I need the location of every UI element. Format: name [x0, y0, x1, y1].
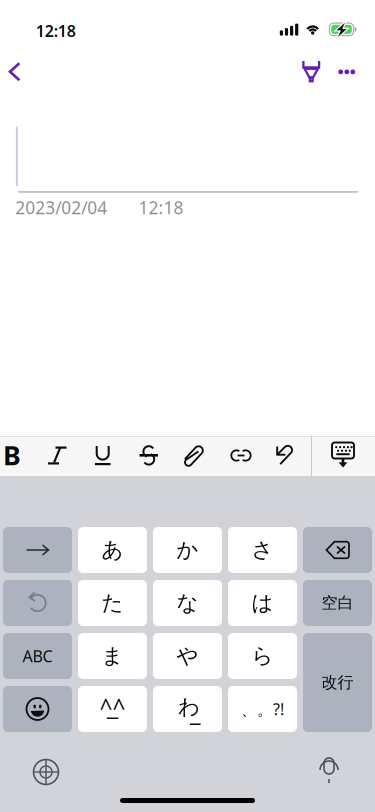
staticText: 12:18	[36, 20, 76, 41]
staticText: た	[101, 590, 123, 616]
staticText: 、。?!	[241, 698, 284, 720]
button[interactable]	[228, 580, 297, 626]
button[interactable]: Delete	[303, 527, 372, 573]
staticText: さ	[251, 537, 273, 563]
staticText: わ	[178, 694, 200, 720]
button[interactable]	[303, 580, 372, 626]
button[interactable]: Bold	[0, 436, 34, 475]
button[interactable]	[153, 580, 222, 626]
staticText: 12:18	[138, 196, 183, 219]
staticText: あ	[101, 537, 123, 563]
button[interactable]	[228, 527, 297, 573]
staticText: か	[176, 537, 198, 563]
button[interactable]: More	[332, 47, 369, 95]
button[interactable]	[228, 686, 297, 732]
button[interactable]: Dictation	[306, 749, 352, 793]
button[interactable]	[78, 633, 147, 679]
button[interactable]: Hide keyboard	[321, 436, 365, 475]
button[interactable]	[78, 686, 147, 732]
staticText: ら	[251, 643, 273, 669]
button[interactable]: Underline	[81, 436, 125, 475]
button[interactable]	[303, 633, 372, 732]
button[interactable]	[78, 580, 147, 626]
button[interactable]: Undo	[265, 436, 309, 475]
staticText: ABC	[22, 645, 52, 667]
button[interactable]	[78, 527, 147, 573]
staticText: 改行	[321, 673, 353, 692]
button[interactable]: Highlighter	[289, 47, 333, 95]
staticText: ^^	[99, 692, 125, 722]
button[interactable]: Next	[3, 527, 72, 573]
staticText: や	[176, 643, 198, 669]
button[interactable]	[153, 686, 222, 732]
button[interactable]: Back	[0, 47, 36, 95]
button[interactable]: Change keyboard	[23, 750, 69, 794]
staticText: な	[176, 590, 198, 616]
button[interactable]: Link	[219, 436, 263, 475]
button[interactable]: Strikethrough	[127, 436, 171, 475]
staticText: 2023/02/04	[15, 196, 107, 219]
button[interactable]	[228, 633, 297, 679]
button[interactable]: Emoji	[3, 686, 72, 732]
button[interactable]: Undo	[3, 580, 72, 626]
button[interactable]	[3, 633, 72, 679]
button[interactable]	[153, 633, 222, 679]
staticText: B	[3, 437, 21, 473]
staticText: は	[251, 590, 273, 616]
button[interactable]: Italic	[35, 436, 79, 475]
button[interactable]: Attach	[173, 436, 217, 475]
staticText: ま	[101, 643, 123, 669]
button[interactable]	[153, 527, 222, 573]
staticText: 空白	[321, 593, 353, 613]
